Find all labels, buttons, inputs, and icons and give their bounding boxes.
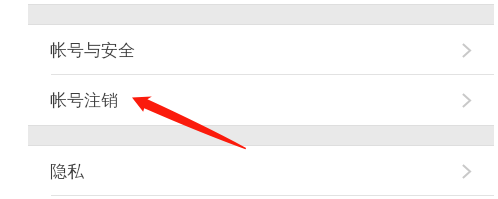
other: Annotation arrow — [0, 0, 498, 199]
button[interactable]: 隐私 — [0, 146, 498, 196]
button[interactable]: 帐号注销 — [0, 75, 498, 125]
staticText: 隐私 — [50, 161, 84, 182]
staticText: 帐号注销 — [50, 90, 118, 111]
staticText: 帐号与安全 — [50, 40, 135, 61]
button[interactable]: 帐号与安全 — [0, 25, 498, 75]
